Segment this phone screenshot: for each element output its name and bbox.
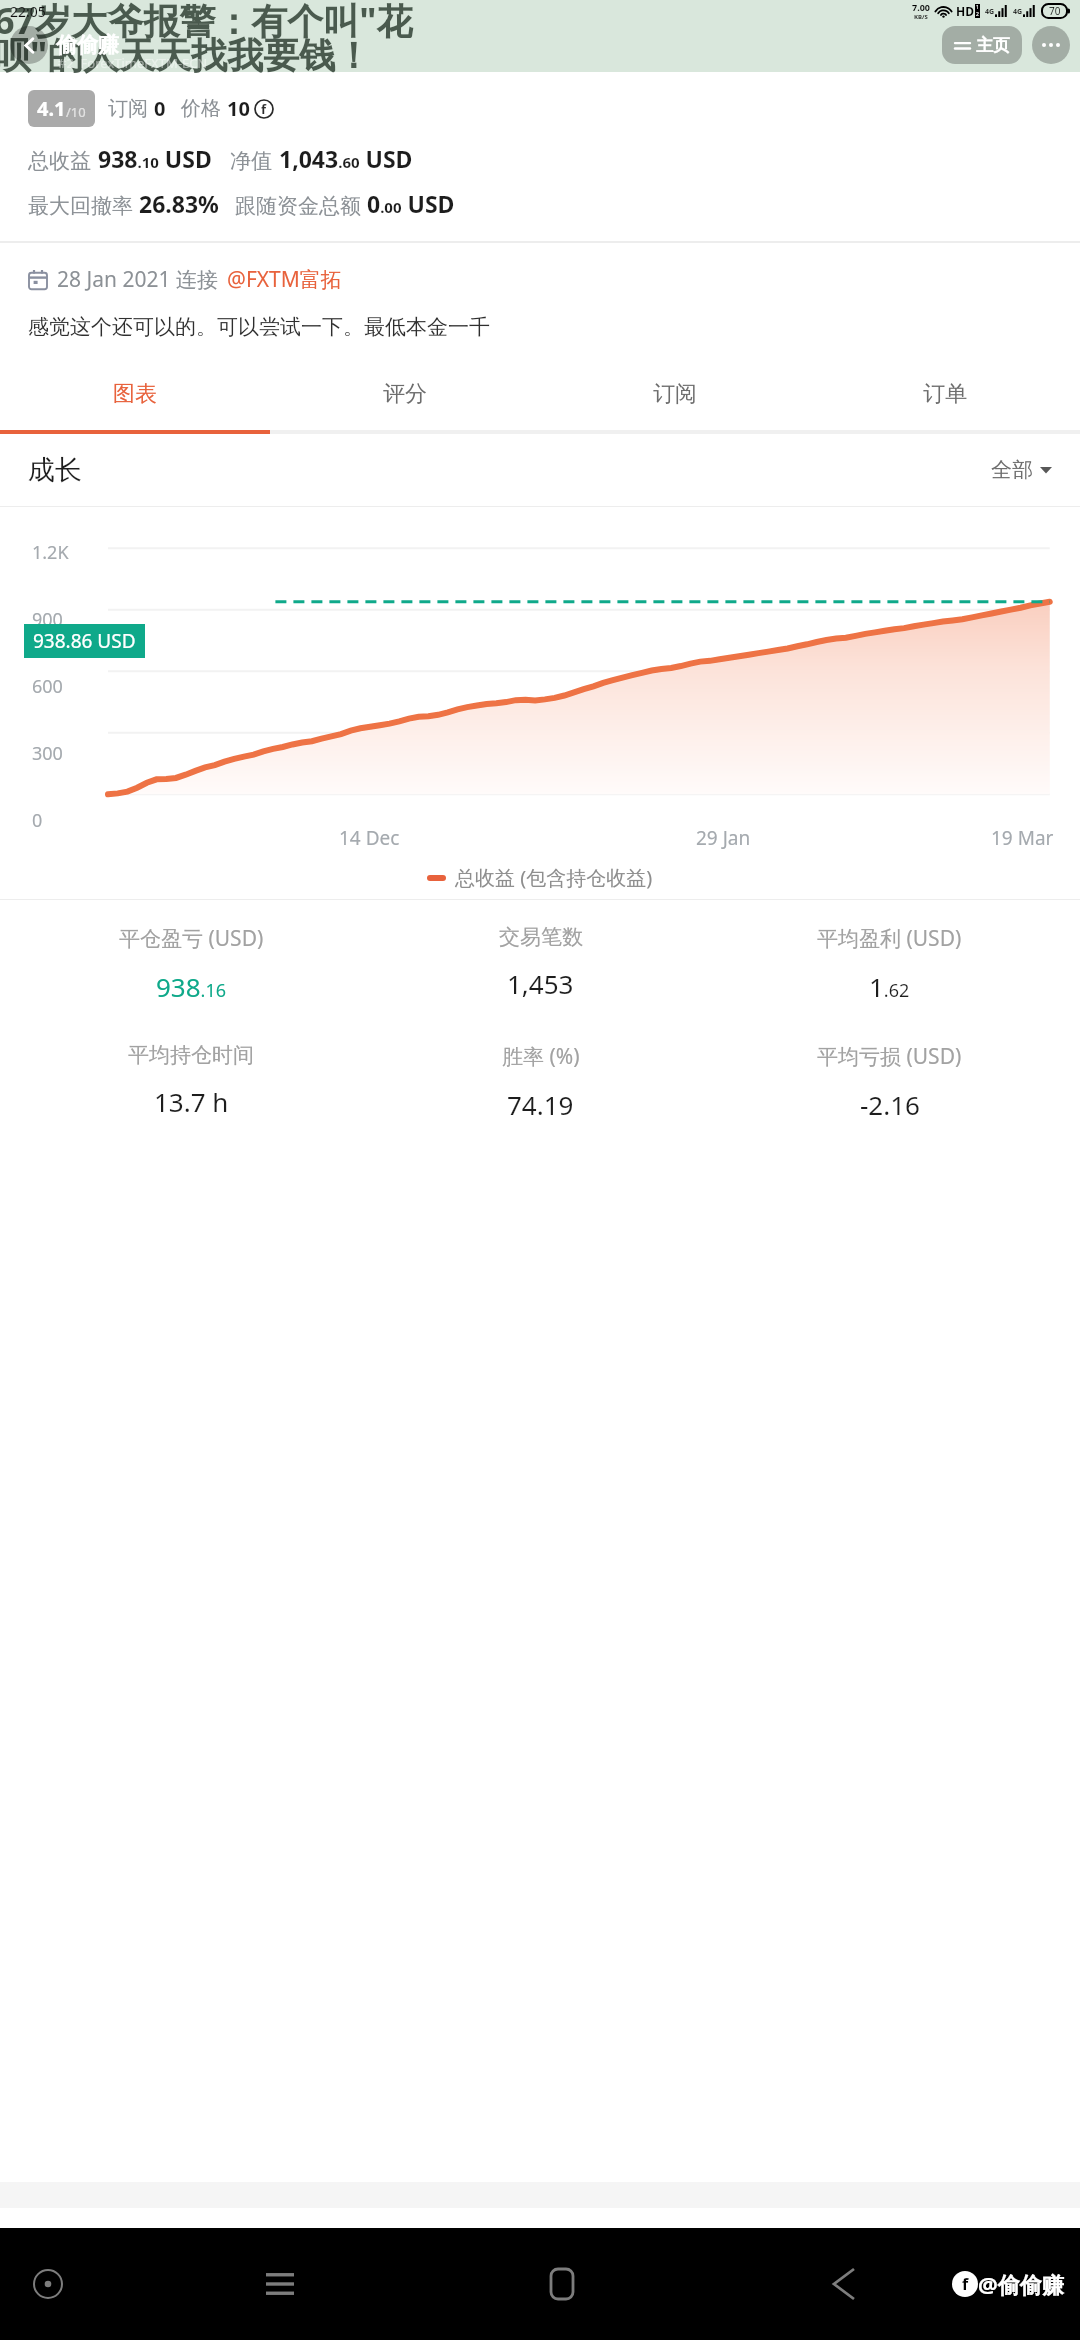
button[interactable]: Record [16,2252,80,2316]
staticText: 平仓盈亏 (USD) [119,924,264,953]
staticText: KB/S [914,13,928,21]
button[interactable]: 938.86 USD [24,624,145,658]
staticText: 29 Jan [696,825,751,851]
staticText: 平均盈利 (USD) [817,924,962,953]
staticText: 10 [227,95,250,122]
staticText: /10 [66,103,86,121]
button[interactable]: Menu [248,2252,312,2316]
staticText: 主页 [976,35,1010,56]
staticText: 订阅 [108,96,148,121]
button[interactable]: 评分 [270,368,540,420]
staticText: 938.16 [156,969,227,1004]
button[interactable]: 图表 [0,368,270,420]
staticText: 1,453 [507,966,574,1001]
staticText: 300 [32,741,63,766]
staticText: 4G [985,7,995,17]
staticText: HD [956,3,974,19]
staticText: 全部 [991,457,1033,483]
staticText: 0 [154,95,166,122]
staticText: 胜率 (%) [502,1042,580,1071]
staticText: 成长 [28,453,82,487]
staticText: 938.86 USD [33,628,136,654]
staticText: 感觉这个还可以的。可以尝试一下。最低本金一千 [28,314,490,340]
button[interactable]: More options [1032,26,1070,64]
staticText: 22:05 [10,2,46,21]
staticText: 938.10 USD [98,143,212,174]
button[interactable]: 订单 [810,368,1080,420]
staticText: 0.00 USD [367,188,455,219]
staticText: f [962,2273,969,2295]
staticText: 70 [1049,4,1061,18]
staticText: 评分 [383,380,427,408]
staticText: 4G [1013,7,1023,17]
staticText: 74.19 [507,1087,574,1122]
button[interactable]: Home [530,2252,594,2316]
staticText: #2 ForexTimeFXTM-ECN [58,54,208,72]
button[interactable]: 全部 [991,457,1052,483]
button[interactable]: Back [10,26,48,64]
staticText: 总收益 [28,148,91,174]
staticText: 呗"的人天天找我要钱！ [0,30,372,79]
staticText: @偷偷赚 [978,2269,1064,2299]
staticText: 26.83% [139,188,219,219]
staticText: 600 [32,674,63,699]
staticText: 订阅 [653,380,697,408]
staticText: 1,043.60 USD [279,143,413,174]
staticText: 净值 [230,148,272,174]
staticText: 交易笔数 [499,924,583,950]
staticText: 订单 [923,380,967,408]
staticText: 总收益 (包含持仓收益) [455,864,653,891]
staticText: 平均持仓时间 [128,1042,254,1068]
button[interactable]: 主页 [942,26,1022,64]
staticText: 28 Jan 2021 连接 [57,265,218,294]
staticText: 平均亏损 (USD) [817,1042,962,1071]
staticText: 1.2K [32,540,69,565]
staticText: 13.7 h [154,1084,229,1119]
staticText: 跟随资金总额 [235,193,361,219]
staticText: 7.00 [912,1,930,13]
staticText: 19 Mar [991,825,1054,851]
staticText: 1 [976,4,979,11]
staticText: 2 [976,11,979,18]
button[interactable]: 订阅 [540,368,810,420]
staticText: 图表 [113,380,157,408]
staticText: 最大回撤率 [28,193,133,219]
staticText: 4.1 [37,95,66,122]
staticText: 14 Dec [339,825,400,851]
staticText: 1.62 [869,969,910,1004]
staticText: -2.16 [860,1087,920,1122]
staticText: 900 [32,607,63,632]
button[interactable]: Back [812,2252,876,2316]
staticText: 价格 [181,96,221,121]
button[interactable]: @FXTM富拓 [227,265,342,294]
staticText: 偷偷赚 [56,32,119,58]
staticText: f [261,100,267,118]
staticText: 0 [32,808,43,833]
staticText: 67岁大爷报警：有个叫"花 [0,0,413,45]
